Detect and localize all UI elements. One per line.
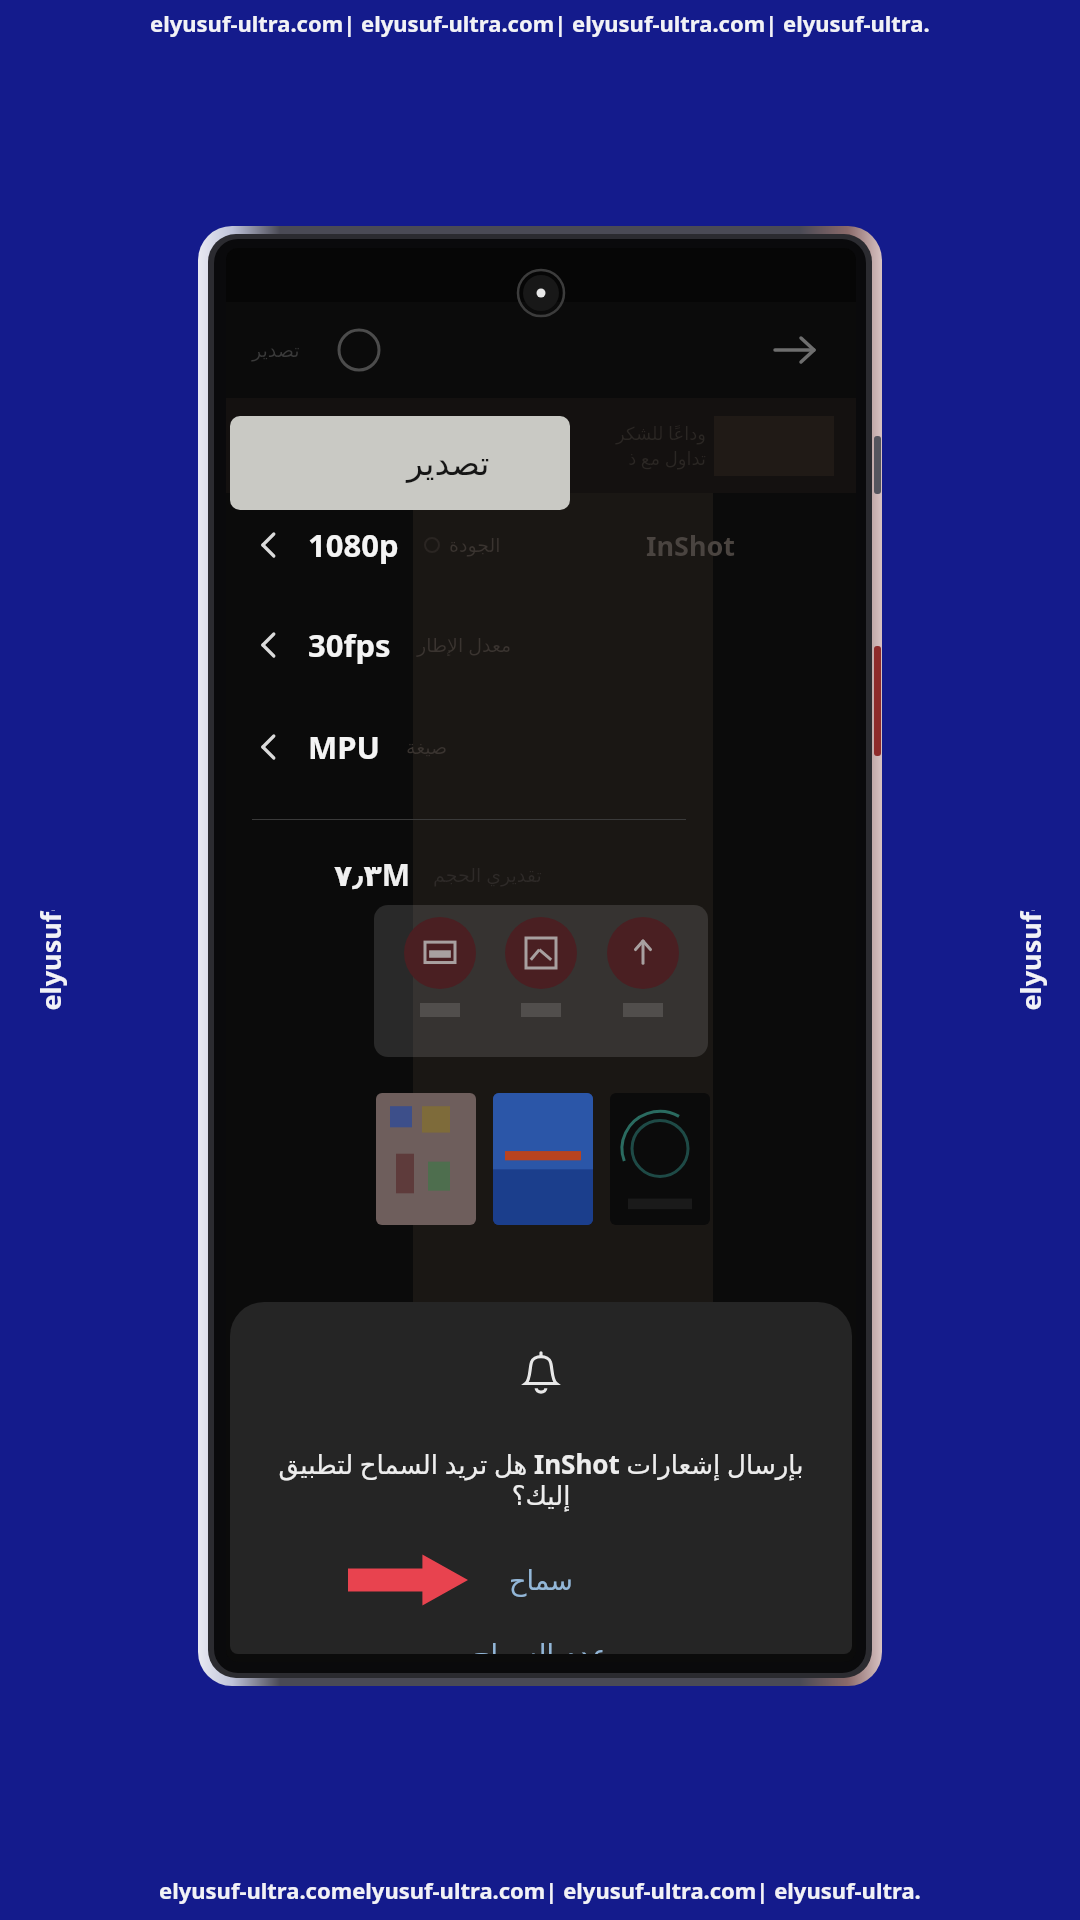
staticText: 30fps xyxy=(308,624,391,666)
staticText: هل تريد السماح لتطبيق InShot بإرسال إشعا… xyxy=(252,1446,830,1511)
staticText: وداعًا للشكر تداول مع ذ xyxy=(616,421,706,471)
staticText: elyusuf-ultra.comelyusuf-ultra.com| elyu… xyxy=(159,1875,921,1905)
button[interactable]: Share target xyxy=(607,917,679,989)
staticText: ٧٫٣M xyxy=(334,854,411,895)
staticText: elyusuf-ultra.com| elyusuf-ultra.com| el… xyxy=(31,910,68,1010)
staticText: سماح xyxy=(509,1565,573,1596)
button[interactable]: Share target xyxy=(505,917,577,989)
staticText: تصدير xyxy=(252,339,300,361)
staticText: InShot xyxy=(646,527,736,564)
button[interactable]: سماح xyxy=(230,1545,852,1615)
button[interactable]: Help xyxy=(328,319,390,381)
button[interactable]: 1080p xyxy=(226,517,856,573)
staticText: 1080p xyxy=(308,524,399,566)
staticText: معدل الإطار xyxy=(417,632,512,658)
button[interactable]: Share target xyxy=(404,917,476,989)
staticText: صيغة xyxy=(406,736,448,758)
button[interactable]: تصدير xyxy=(248,322,304,378)
staticText: MPU xyxy=(308,726,380,768)
button[interactable]: Template xyxy=(376,1093,476,1225)
staticText: تقديري الحجم xyxy=(433,862,542,888)
button[interactable]: Template xyxy=(493,1093,593,1225)
staticText: الجودة xyxy=(449,534,501,556)
button[interactable]: 30fps xyxy=(226,617,856,673)
staticText: تصدير xyxy=(407,444,490,482)
button[interactable]: عدم السماح xyxy=(230,1635,852,1654)
staticText: elyusuf-ultra.com| elyusuf-ultra.com| el… xyxy=(1011,910,1048,1010)
staticText: عدم السماح xyxy=(473,1635,609,1654)
button[interactable]: MPU xyxy=(226,719,856,775)
staticText: elyusuf-ultra.com| elyusuf-ultra.com| el… xyxy=(150,8,930,38)
button[interactable]: تصدير xyxy=(230,416,570,510)
button[interactable]: Export xyxy=(764,319,826,381)
button[interactable]: Template xyxy=(610,1093,710,1225)
